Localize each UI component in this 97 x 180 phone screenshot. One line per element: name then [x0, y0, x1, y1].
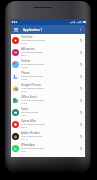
- staticText: v9.42: [21, 65, 28, 68]
- button[interactable]: Tasks: [11, 106, 85, 118]
- staticText: Twitter: [21, 59, 31, 63]
- staticText: com.google.youtube: [21, 38, 46, 41]
- staticText: Application 1: [23, 28, 43, 32]
- staticText: com.android.dialer: [21, 74, 44, 77]
- staticText: com.microsoft.excel: [21, 98, 45, 101]
- staticText: Opera Mini: [21, 119, 37, 123]
- staticText: v63.1: [21, 125, 28, 128]
- button[interactable]: YouTube: [11, 34, 85, 46]
- staticText: Tasks: [21, 107, 29, 111]
- staticText: v7.03: [21, 77, 28, 80]
- staticText: com.google.photos: [21, 86, 44, 89]
- button[interactable]: Adobe Reader: [11, 130, 85, 142]
- staticText: v5.21: [21, 89, 28, 92]
- button[interactable]: Opera Mini: [11, 118, 85, 130]
- button[interactable]: Twitter: [11, 58, 85, 70]
- staticText: Adobe Reader: [21, 131, 41, 135]
- staticText: org.dmfs.tasks: [21, 110, 39, 113]
- button[interactable]: Google Photos: [11, 82, 85, 94]
- staticText: com.adobe.reader: [21, 134, 43, 137]
- button[interactable]: AliExpress: [11, 46, 85, 58]
- staticText: Office Excel: [21, 95, 37, 99]
- staticText: Google Photos: [21, 83, 41, 87]
- staticText: Phone: [21, 71, 30, 75]
- staticText: v2.21: [21, 149, 28, 152]
- staticText: v16.0: [21, 101, 28, 104]
- staticText: com.alibaba.aliexp: [21, 50, 43, 53]
- staticText: AliExpress: [21, 47, 35, 51]
- staticText: v4.01: [21, 113, 28, 116]
- staticText: v8.11: [21, 53, 28, 56]
- staticText: com.whatsapp.msg: [21, 146, 44, 149]
- button[interactable]: Office Excel: [11, 94, 85, 106]
- staticText: WhatsApp: [21, 143, 35, 147]
- staticText: v21.2: [21, 137, 28, 140]
- staticText: com.opera.mini.web: [21, 122, 45, 125]
- staticText: YouTube: [21, 35, 33, 39]
- button[interactable]: Phone: [11, 70, 85, 82]
- staticText: v16.2: [21, 41, 28, 44]
- button[interactable]: Open navigation menu: [11, 25, 20, 34]
- staticText: com.twitter.android: [21, 62, 44, 65]
- button[interactable]: More options: [77, 25, 84, 34]
- button[interactable]: WhatsApp: [11, 142, 85, 154]
